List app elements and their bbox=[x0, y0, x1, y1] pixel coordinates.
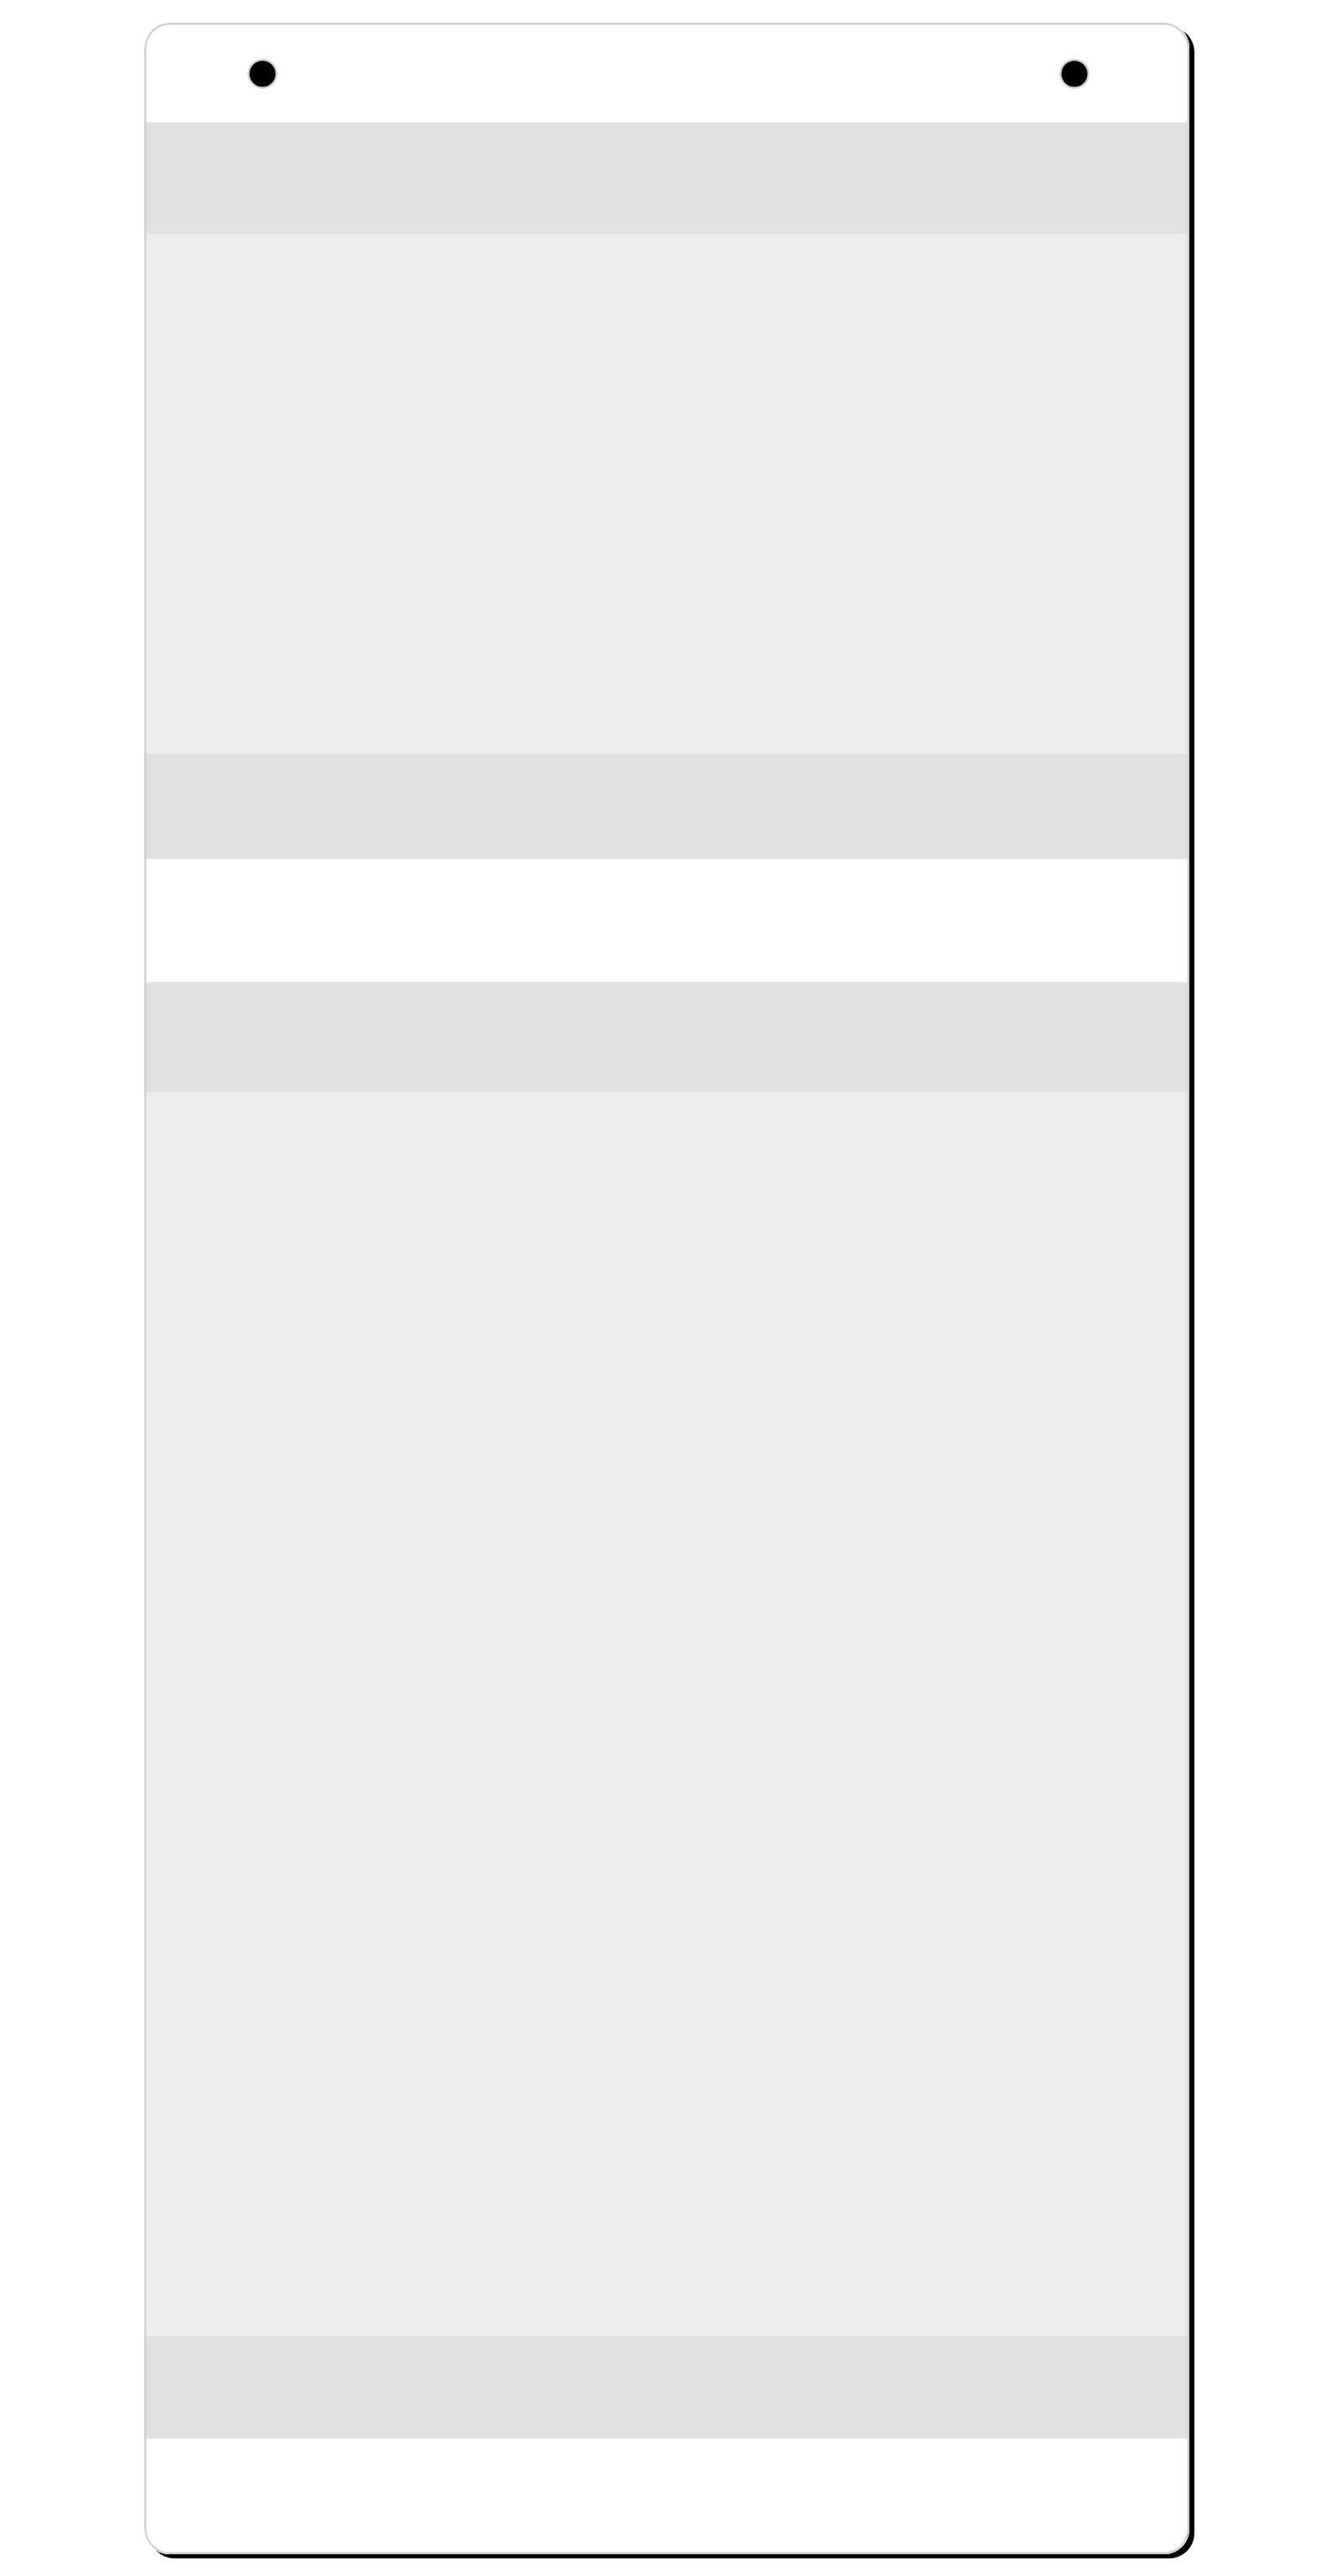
button[interactable]: Status indicator bbox=[1059, 59, 1090, 89]
button[interactable] bbox=[144, 2438, 1189, 2554]
button[interactable]: Status indicator bbox=[247, 59, 278, 89]
